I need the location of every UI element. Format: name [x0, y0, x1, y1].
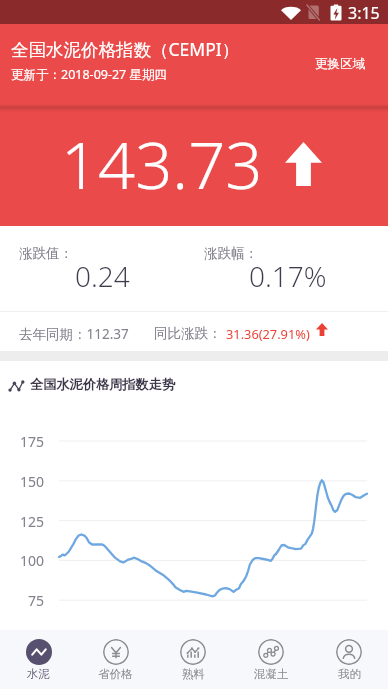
staticText: 143.73 — [61, 120, 263, 209]
staticText: 涨跌幅： — [204, 245, 258, 262]
button[interactable]: 我的 — [310, 630, 388, 689]
staticText: 去年同期：112.37 — [19, 325, 129, 343]
staticText: 0.24 — [75, 257, 130, 295]
staticText: 同比涨跌： — [154, 325, 222, 342]
button[interactable]: 省价格 — [77, 630, 154, 689]
button[interactable]: 水泥 — [0, 630, 77, 689]
staticText: 省价格 — [98, 667, 133, 681]
staticText: 涨跌值： — [19, 245, 73, 262]
staticText: 175 — [0, 432, 44, 451]
staticText: 0.17% — [249, 257, 327, 295]
staticText: 我的 — [338, 667, 361, 681]
button[interactable]: 熟料 — [154, 630, 232, 689]
staticText: 75 — [0, 591, 44, 610]
staticText: 31.36(27.91%) — [226, 325, 310, 342]
staticText: 150 — [0, 472, 44, 491]
button[interactable]: 更换区域 — [311, 52, 369, 76]
staticText: 全国水泥价格周指数走势 — [30, 376, 176, 393]
staticText: 125 — [0, 512, 44, 531]
staticText: 100 — [0, 551, 44, 570]
staticText: 更新于：2018-09-27 星期四 — [11, 66, 168, 83]
staticText: 熟料 — [182, 667, 205, 681]
staticText: 全国水泥价格指数（CEMPI） — [11, 37, 240, 61]
staticText: 水泥 — [27, 667, 50, 681]
staticText: 更换区域 — [315, 56, 365, 72]
staticText: 混凝土 — [254, 667, 289, 681]
button[interactable]: 混凝土 — [232, 630, 310, 689]
staticText: 3:15 — [348, 2, 380, 24]
